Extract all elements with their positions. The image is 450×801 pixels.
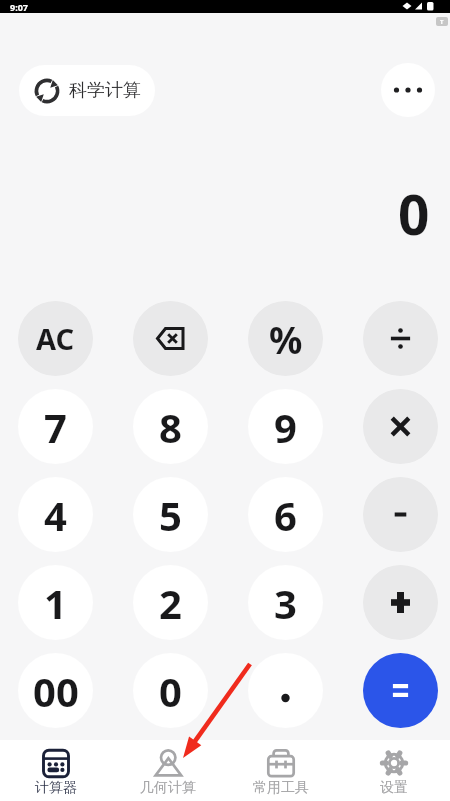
staticText: 常用工具 — [253, 779, 309, 797]
staticText: AC — [36, 319, 75, 358]
button[interactable]: 7 — [18, 389, 93, 464]
button[interactable]: 设置 — [337, 740, 450, 801]
staticText: 9:07 — [10, 1, 28, 13]
button[interactable] — [248, 653, 323, 728]
staticText: 0 — [398, 176, 430, 248]
staticText: % — [269, 314, 303, 364]
button[interactable]: 计算器 — [0, 740, 112, 801]
button[interactable]: 1 — [18, 565, 93, 640]
staticText: 0 — [159, 664, 182, 718]
staticText: 5 — [159, 488, 182, 542]
staticText: 4 — [44, 488, 67, 542]
button[interactable] — [133, 301, 208, 376]
staticText: 2 — [159, 576, 182, 630]
button[interactable]: 6 — [248, 477, 323, 552]
button[interactable]: 4 — [18, 477, 93, 552]
button[interactable]: 0 — [133, 653, 208, 728]
staticText: 3 — [274, 576, 297, 630]
button[interactable] — [363, 389, 438, 464]
button[interactable]: 科学计算 — [19, 65, 155, 116]
staticText: 计算器 — [35, 779, 77, 797]
button[interactable]: % — [248, 301, 323, 376]
staticText: 9 — [274, 400, 297, 454]
staticText: 8 — [159, 400, 182, 454]
staticText: 00 — [33, 664, 79, 718]
staticText: 1 — [44, 576, 67, 630]
staticText: 设置 — [380, 779, 408, 797]
button[interactable]: 2 — [133, 565, 208, 640]
staticText: 6 — [274, 488, 297, 542]
staticText: 几何计算 — [140, 779, 196, 797]
button[interactable]: 8 — [133, 389, 208, 464]
button[interactable]: AC — [18, 301, 93, 376]
button[interactable]: 00 — [18, 653, 93, 728]
button[interactable] — [363, 301, 438, 376]
staticText: 科学计算 — [69, 79, 141, 102]
button[interactable]: 5 — [133, 477, 208, 552]
button[interactable] — [363, 653, 438, 728]
button[interactable] — [363, 477, 438, 552]
button[interactable]: 3 — [248, 565, 323, 640]
button[interactable]: 常用工具 — [224, 740, 337, 801]
button[interactable]: 9 — [248, 389, 323, 464]
staticText: T — [440, 18, 444, 26]
button[interactable]: 几何计算 — [112, 740, 224, 801]
button[interactable] — [363, 565, 438, 640]
staticText: 7 — [44, 400, 67, 454]
button[interactable] — [381, 63, 435, 117]
